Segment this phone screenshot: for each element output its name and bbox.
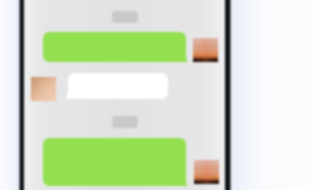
button[interactable]: Sender profile photo — [193, 38, 218, 62]
button[interactable] — [43, 138, 186, 186]
button[interactable] — [43, 32, 186, 62]
button[interactable]: Conversation timestamp — [112, 116, 138, 128]
button[interactable] — [68, 73, 168, 99]
button[interactable]: Sender profile photo — [194, 160, 219, 184]
button[interactable]: Contact profile photo — [31, 77, 56, 101]
button[interactable]: Conversation timestamp — [112, 11, 138, 23]
